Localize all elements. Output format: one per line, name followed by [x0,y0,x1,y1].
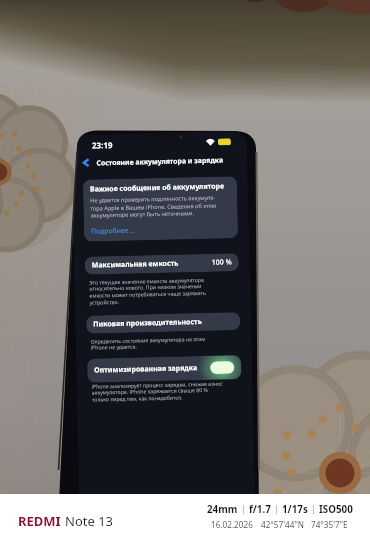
staticText: f/1.7 [249,503,271,516]
staticText: REDMI [18,512,61,530]
staticText: iPhone анализирует процесс зарядки, сниж… [92,379,224,404]
staticText: 24mm [207,503,238,516]
staticText: Пиковая производительность [93,317,202,330]
staticText: Максимальная емкость [92,258,179,270]
button[interactable]: Пиковая производительность [86,312,240,334]
staticText: Это текущее значение емкости аккумулятор… [89,276,207,307]
button[interactable]: Максимальная емкость [85,253,239,275]
staticText: Оптимизированная зарядка [94,363,197,375]
staticText: Note 13 [65,512,114,530]
staticText: ISO500 [319,503,353,516]
staticText: Подробнее... [91,226,135,236]
staticText: Определить состояние аккумулятора на это… [90,335,206,352]
staticText: 74°35'7"E [311,519,348,530]
button[interactable]: Оптимизированная зарядка [87,355,241,383]
staticText: 23:19 [92,139,113,151]
staticText: 16.02.2026 [211,519,253,530]
button[interactable]: Back [79,155,93,170]
staticText: Не удается проверить подлинность аккумул… [90,194,217,219]
staticText: Состояние аккумулятора и зарядка [96,155,223,167]
staticText: 1/17s [282,503,308,516]
staticText: Важное сообщение об аккумуляторе [90,181,224,195]
staticText: 100 % [212,257,232,268]
button[interactable]: Optimised battery charging toggle [207,357,237,378]
button[interactable]: Важное сообщение об аккумуляторе [83,176,238,242]
staticText: 42°57'44"N [261,519,305,530]
